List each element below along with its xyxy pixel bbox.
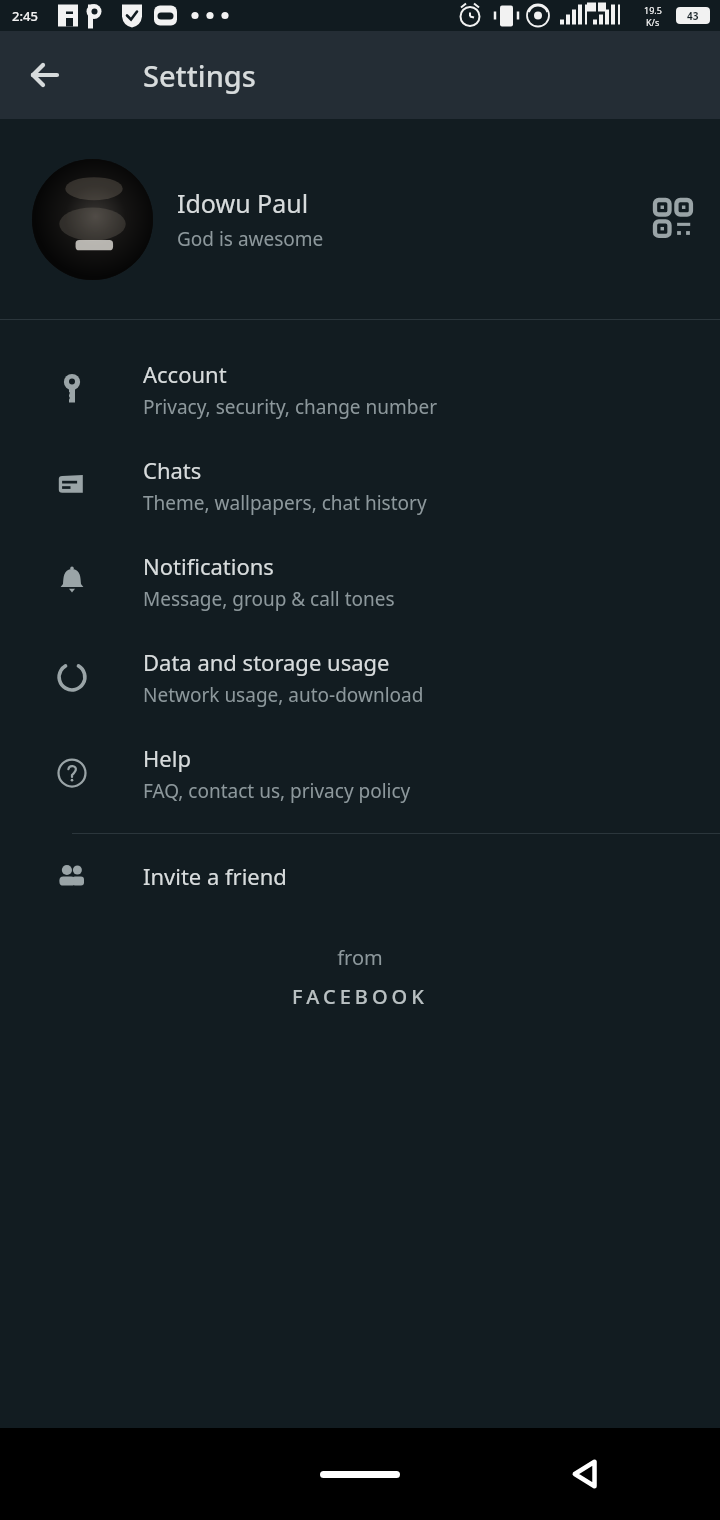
staticText: 19.5 (644, 4, 662, 16)
staticText: Theme, wallpapers, chat history (143, 490, 427, 516)
staticText: God is awesome (177, 226, 324, 252)
button[interactable]: Invite a friend (0, 834, 720, 918)
staticText: Idowu Paul (177, 186, 309, 220)
button[interactable]: Back (550, 1439, 620, 1509)
staticText: Chats (143, 455, 202, 485)
button[interactable]: Home (300, 1454, 420, 1494)
button[interactable]: QR code (644, 189, 704, 249)
button[interactable]: Help (0, 725, 720, 821)
staticText: K/s (646, 16, 660, 28)
staticText: from (337, 944, 383, 971)
staticText: Message, group & call tones (143, 586, 395, 612)
button[interactable]: Data and storage usage (0, 629, 720, 725)
staticText: Data and storage usage (143, 647, 390, 677)
staticText: Notifications (143, 551, 274, 581)
staticText: Settings (143, 56, 256, 95)
button[interactable]: Idowu Paul (0, 119, 720, 319)
staticText: Help (143, 743, 191, 773)
button[interactable]: Notifications (0, 533, 720, 629)
button[interactable]: Back (18, 48, 72, 102)
staticText: Network usage, auto-download (143, 682, 424, 708)
button[interactable]: Account (0, 341, 720, 437)
staticText: FACEBOOK (292, 983, 428, 1010)
staticText: Invite a friend (143, 861, 287, 891)
staticText: Privacy, security, change number (143, 394, 437, 420)
staticText: Account (143, 359, 227, 389)
button[interactable]: Chats (0, 437, 720, 533)
staticText: 2:45 (12, 7, 38, 25)
staticText: 43 (687, 9, 699, 23)
staticText: FAQ, contact us, privacy policy (143, 778, 411, 804)
